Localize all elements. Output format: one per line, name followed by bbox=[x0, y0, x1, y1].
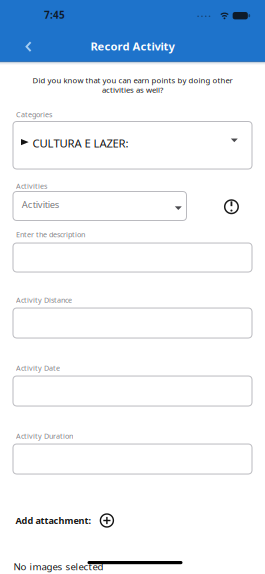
staticText: No images selected bbox=[13, 560, 103, 573]
staticText: 7:45 bbox=[44, 8, 65, 22]
staticText: Activities bbox=[16, 181, 47, 191]
staticText: Activities bbox=[22, 198, 60, 211]
staticText: CULTURA E LAZER: bbox=[32, 135, 128, 151]
button[interactable]: CULTURA E LAZER: bbox=[13, 121, 252, 169]
staticText: Activity Duration bbox=[16, 431, 73, 441]
staticText: Enter the description bbox=[16, 229, 85, 239]
button[interactable]: Add attachment bbox=[100, 514, 113, 527]
staticText: Record Activity bbox=[90, 38, 174, 54]
button[interactable]: Activities required bbox=[225, 200, 238, 213]
staticText: Did you know that you can earn points by… bbox=[32, 75, 232, 85]
button[interactable]: Activities bbox=[13, 191, 186, 220]
staticText: Categories bbox=[16, 109, 52, 119]
staticText: Activity Date bbox=[16, 363, 60, 373]
staticText: Activity Distance bbox=[16, 295, 72, 305]
staticText: activities as well? bbox=[102, 84, 163, 95]
button[interactable]: Back bbox=[13, 31, 43, 62]
staticText: Add attachment: bbox=[15, 514, 91, 527]
